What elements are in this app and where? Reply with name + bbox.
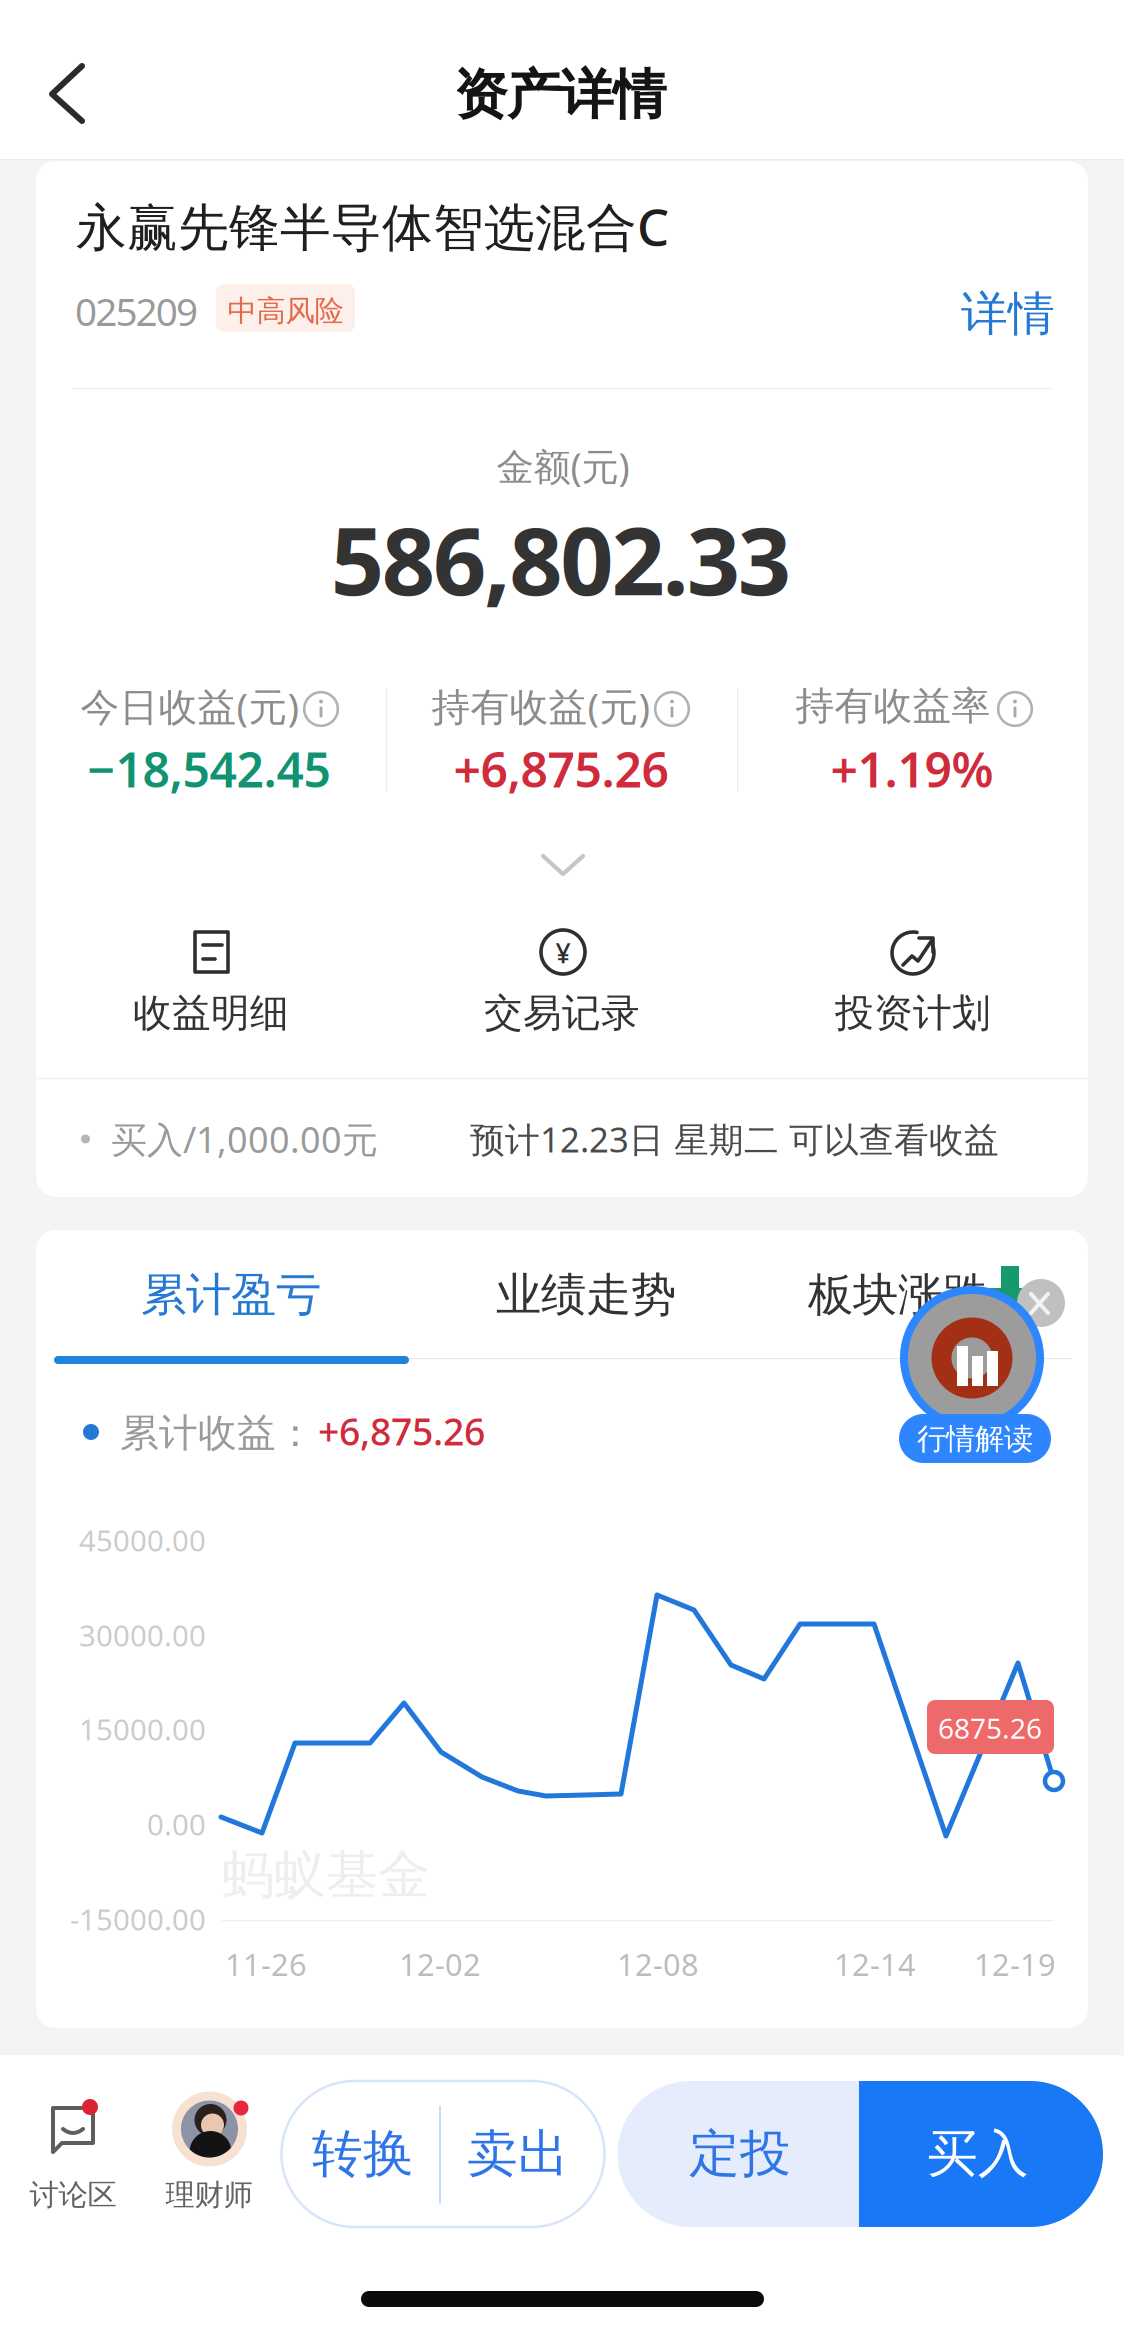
button[interactable]: 转换 (0, 0, 1124, 2332)
button[interactable]: 行情解读 (0, 0, 1124, 2332)
staticText: 累计收益： (120, 1409, 315, 1457)
staticText: 交易记录 (484, 989, 640, 1037)
staticText: 30000.00 (79, 1615, 206, 1654)
staticText: 12-14 (834, 1944, 916, 1984)
button[interactable]: 讨论区 (0, 0, 1124, 2332)
staticText: −18,542.45 (87, 737, 330, 801)
staticText: 12-02 (399, 1944, 481, 1984)
staticText: 0.00 (147, 1804, 206, 1843)
staticText: 持有收益率 (795, 682, 990, 730)
staticText: 买入/1,000.00元 (111, 1115, 378, 1163)
staticText: 12-08 (617, 1944, 699, 1984)
staticText: 定投 (689, 2123, 791, 2185)
staticText: 15000.00 (79, 1709, 206, 1748)
staticText: 45000.00 (79, 1520, 206, 1559)
staticText: 收益明细 (133, 989, 289, 1037)
staticText: 板块涨跌 (808, 1267, 988, 1323)
staticText: 今日收益(元) (80, 680, 299, 732)
button[interactable]: 累计盈亏 (0, 0, 1124, 2332)
staticText: 卖出 (467, 2123, 569, 2185)
staticText: 11-26 (225, 1944, 307, 1984)
staticText: 行情解读 (917, 1421, 1033, 1457)
staticText: 金额(元) (496, 441, 629, 491)
button[interactable]: 投资计划 (0, 0, 1124, 2332)
staticText: +6,875.26 (453, 737, 668, 801)
button[interactable]: 定投 (0, 0, 1124, 2332)
button[interactable]: 返回 (0, 0, 1124, 2332)
staticText: -15000.00 (70, 1899, 206, 1938)
staticText: 业绩走势 (496, 1267, 676, 1323)
staticText: 预计12.23日 星期二 可以查看收益 (470, 1116, 999, 1162)
button[interactable]: 收益明细 (0, 0, 1124, 2332)
button[interactable]: 业绩走势 (0, 0, 1124, 2332)
button[interactable]: 板块涨跌 (0, 0, 1124, 2332)
staticText: 持有收益(元) (431, 680, 650, 732)
staticText: 蚂蚁基金 (222, 1843, 430, 1907)
staticText: +1.19% (830, 737, 993, 801)
staticText: 025209 (75, 285, 198, 337)
staticText: 12-19 (974, 1944, 1056, 1984)
staticText: 详情 (961, 285, 1055, 343)
staticText: 买入 (927, 2123, 1029, 2185)
staticText: +6,875.26 (318, 1406, 485, 1456)
button[interactable]: 展开 (0, 0, 1124, 2332)
staticText: 中高风险 (227, 293, 343, 329)
button[interactable]: 理财师 (0, 0, 1124, 2332)
staticText: 投资计划 (835, 989, 991, 1037)
button[interactable]: 关闭 (0, 0, 1124, 2332)
staticText: 理财师 (165, 2177, 252, 2213)
button[interactable]: 交易记录 (0, 0, 1124, 2332)
staticText: 转换 (312, 2123, 414, 2185)
staticText: 永赢先锋半导体智选混合C (76, 192, 669, 260)
staticText: 讨论区 (29, 2177, 116, 2213)
staticText: 累计盈亏 (141, 1267, 321, 1323)
staticText: ¥ (555, 935, 570, 971)
staticText: 6875.26 (938, 1709, 1042, 1747)
staticText: 586,802.33 (331, 497, 791, 621)
button[interactable]: 详情 (0, 0, 1124, 2332)
staticText: 资产详情 (454, 62, 666, 128)
